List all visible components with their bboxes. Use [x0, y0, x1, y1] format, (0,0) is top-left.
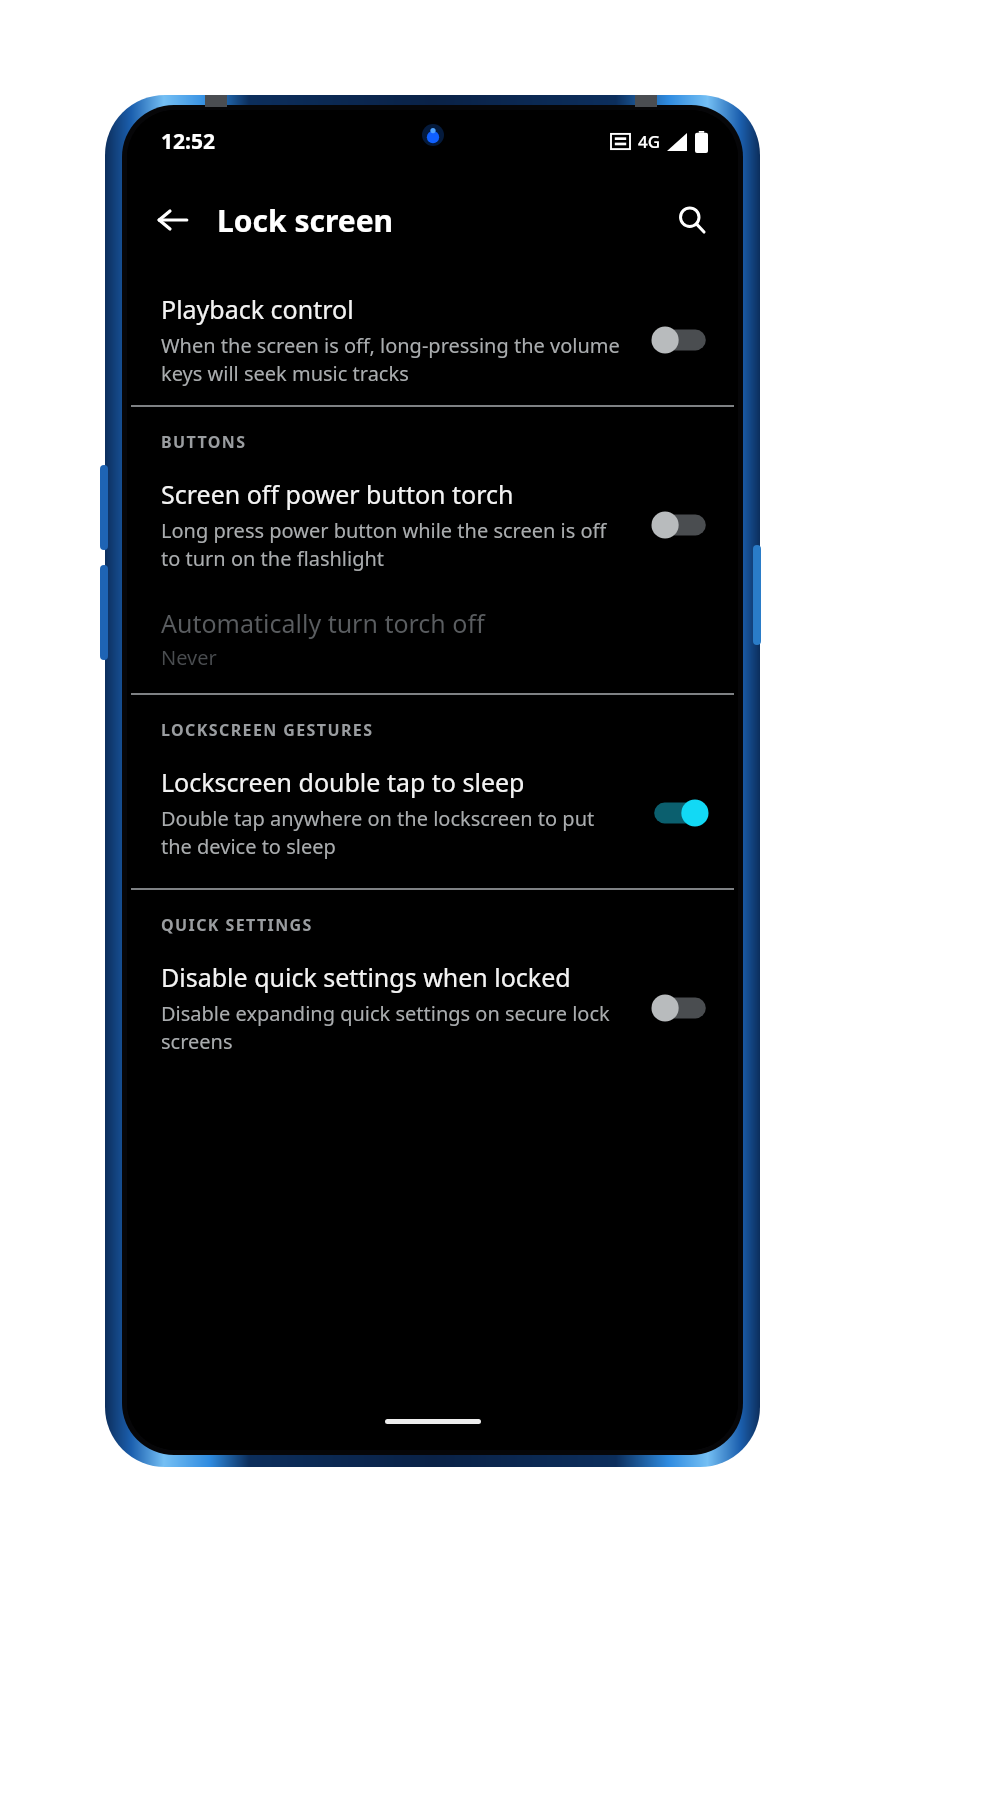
- staticText: Lockscreen double tap to sleep: [161, 765, 525, 799]
- staticText: Lock screen: [217, 200, 394, 241]
- button[interactable]: On: [650, 793, 710, 833]
- staticText: Playback control: [161, 292, 354, 326]
- staticText: Screen off power button torch: [161, 477, 514, 511]
- staticText: Never: [161, 644, 217, 671]
- button[interactable]: Playback control: [127, 276, 738, 405]
- staticText: Double tap anywhere on the lockscreen to…: [161, 805, 628, 860]
- button[interactable]: Off: [650, 505, 710, 545]
- staticText: Disable quick settings when locked: [161, 960, 571, 994]
- button[interactable]: Off: [650, 320, 710, 360]
- staticText: 12:52: [161, 127, 215, 156]
- staticText: LOCKSCREEN GESTURES: [161, 719, 374, 741]
- button[interactable]: Search: [664, 192, 720, 248]
- button[interactable]: Automatically turn torch off: [127, 590, 738, 677]
- staticText: When the screen is off, long-pressing th…: [161, 332, 628, 387]
- staticText: BUTTONS: [161, 431, 247, 453]
- staticText: 4G: [638, 130, 661, 153]
- button[interactable]: Screen off power button torch: [127, 461, 738, 590]
- button[interactable]: Off: [650, 988, 710, 1028]
- staticText: Long press power button while the screen…: [161, 517, 628, 572]
- staticText: Disable expanding quick settings on secu…: [161, 1000, 628, 1055]
- staticText: QUICK SETTINGS: [161, 914, 313, 936]
- button[interactable]: Lockscreen double tap to sleep: [127, 749, 738, 878]
- staticText: Automatically turn torch off: [161, 606, 485, 640]
- button[interactable]: Disable quick settings when locked: [127, 944, 738, 1073]
- button[interactable]: Back: [145, 192, 201, 248]
